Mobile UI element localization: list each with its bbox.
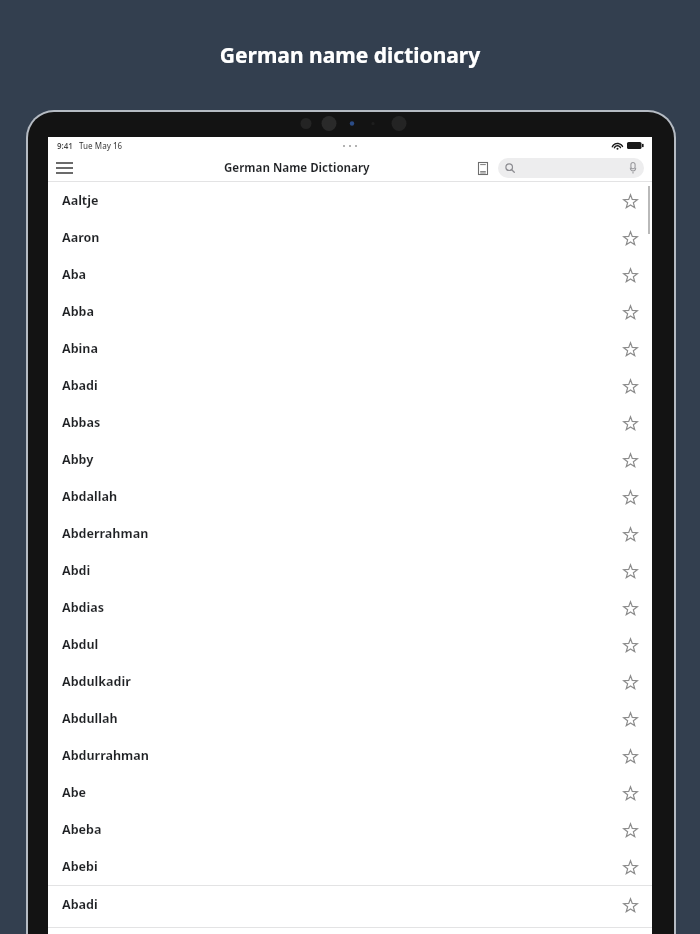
button[interactable]: Favorite Abby [618, 448, 642, 472]
button[interactable]: Favorite Abe [618, 781, 642, 805]
button[interactable]: Abdi [48, 552, 652, 589]
button[interactable]: Favorite Abderrahman [618, 522, 642, 546]
button[interactable]: Favorite Abdallah [618, 485, 642, 509]
button[interactable]: Abe [48, 774, 652, 811]
staticText: Abdallah [62, 488, 618, 505]
staticText: Abebi [62, 858, 618, 875]
button[interactable]: Favorite Abdurrahman [618, 744, 642, 768]
button[interactable]: Favorite Abdulkadir [618, 670, 642, 694]
staticText: Abdurrahman [62, 747, 618, 764]
button[interactable]: Abina [48, 330, 652, 367]
button[interactable]: Favorite Aba [618, 263, 642, 287]
button[interactable]: Favorite Abdi [618, 559, 642, 583]
button[interactable]: Aaron [48, 219, 652, 256]
button[interactable]: Abdullah [48, 700, 652, 737]
button[interactable]: Abby [48, 441, 652, 478]
staticText: Abdi [62, 562, 618, 579]
button[interactable]: Abderrahman [48, 515, 652, 552]
button[interactable]: Favorite Aaltje [618, 189, 642, 213]
staticText: Aaron [62, 229, 618, 246]
button[interactable]: Favorite Aaron [618, 226, 642, 250]
staticText: Abeba [62, 821, 618, 838]
button[interactable]: Aba [48, 256, 652, 293]
staticText: German Name Dictionary [224, 160, 370, 176]
button[interactable]: Menu [52, 156, 76, 180]
staticText: 9:41 [57, 140, 73, 151]
button[interactable]: Abdurrahman [48, 737, 652, 774]
staticText: Abadi [62, 377, 618, 394]
button[interactable]: Abba [48, 293, 652, 330]
staticText: German name dictionary [0, 41, 700, 70]
button[interactable]: Favorite Abeba [618, 818, 642, 842]
button[interactable]: Abdul [48, 626, 652, 663]
staticText: Abbas [62, 414, 618, 431]
button[interactable]: Favorite Abadi [618, 374, 642, 398]
button[interactable]: Search [498, 158, 644, 178]
staticText: Aaltje [62, 192, 618, 209]
staticText: Abdulkadir [62, 673, 618, 690]
button[interactable]: Abebi [48, 848, 652, 885]
button[interactable]: Abdallah [48, 478, 652, 515]
staticText: Abderrahman [62, 525, 618, 542]
button[interactable]: Favorite Abbas [618, 411, 642, 435]
staticText: Abdullah [62, 710, 618, 727]
button[interactable]: Favorite Abba [618, 300, 642, 324]
button[interactable]: Abbas [48, 404, 652, 441]
staticText: Abba [62, 303, 618, 320]
button[interactable]: Abeba [48, 811, 652, 848]
button[interactable]: Favorite Abdullah [618, 707, 642, 731]
button[interactable]: Favorite Abdias [618, 596, 642, 620]
button[interactable]: Favorite Abdul [618, 633, 642, 657]
button[interactable]: Dictionary book [472, 157, 494, 179]
button[interactable]: Favorite Abebi [618, 855, 642, 879]
button[interactable]: Abdulkadir [48, 663, 652, 700]
staticText: Abdul [62, 636, 618, 653]
staticText: Abadi [62, 896, 618, 913]
staticText: Abina [62, 340, 618, 357]
staticText: Tue May 16 [79, 140, 123, 151]
button[interactable]: Abdias [48, 589, 652, 626]
button[interactable]: Favorite Abina [618, 337, 642, 361]
staticText: Abdias [62, 599, 618, 616]
staticText: Abby [62, 451, 618, 468]
button[interactable]: Abadi [48, 367, 652, 404]
staticText: Aba [62, 266, 618, 283]
button[interactable]: Favorite Abadi [618, 893, 642, 917]
button[interactable]: Aaltje [48, 182, 652, 219]
button[interactable]: Abadi [48, 886, 652, 923]
staticText: Abe [62, 784, 618, 801]
